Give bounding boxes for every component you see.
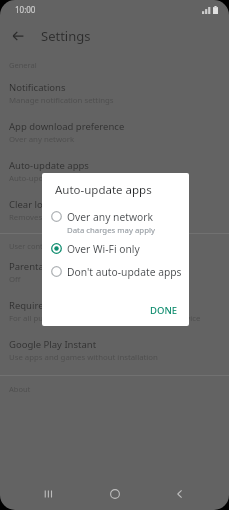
button[interactable]: Google Play Instant (0, 332, 229, 368)
staticText: Over Wi-Fi only (67, 242, 140, 256)
staticText: Parental controls (9, 260, 85, 273)
button[interactable]: Parental controls (0, 254, 229, 290)
staticText: Removes search history from this device (9, 212, 157, 223)
staticText: Use apps and games without installation (9, 352, 158, 363)
button[interactable]: DONE (144, 301, 184, 320)
staticText: Off (9, 274, 21, 285)
button[interactable]: Back (5, 23, 31, 49)
button[interactable]: Home (99, 478, 131, 510)
button[interactable]: Auto-update apps (0, 153, 229, 189)
staticText: Clear local search history (9, 198, 121, 211)
staticText: Auto-update apps (55, 182, 152, 198)
button[interactable]: App download preference (0, 114, 229, 150)
staticText: Don't auto-update apps (67, 265, 182, 279)
staticText: Auto-update apps (9, 159, 89, 172)
button[interactable]: Notifications (0, 75, 229, 111)
staticText: Google Play Instant (9, 338, 97, 351)
button[interactable]: Require authentication for purchases (0, 293, 229, 329)
staticText: Settings (41, 27, 91, 45)
staticText: 10:00 (15, 4, 36, 15)
button[interactable]: Back (164, 478, 196, 510)
button[interactable]: Recents (33, 478, 65, 510)
staticText: User controls (9, 241, 56, 251)
staticText: General (9, 60, 37, 70)
staticText: DONE (150, 304, 178, 317)
staticText: Auto-update apps over Wi-Fi only (9, 173, 131, 184)
staticText: For all purchases through Google Play on… (9, 313, 201, 324)
staticText: Over any network (67, 210, 154, 224)
staticText: Data charges may apply (67, 225, 155, 236)
button[interactable]: Don't auto-update apps (42, 261, 189, 282)
staticText: Manage notification settings (9, 95, 114, 106)
staticText: Over any network (9, 134, 75, 145)
button[interactable]: Over any network (42, 206, 189, 238)
staticText: About (9, 384, 31, 394)
staticText: Notifications (9, 81, 66, 94)
staticText: App download preference (9, 120, 125, 133)
button[interactable]: Over Wi-Fi only (42, 238, 189, 259)
staticText: Require authentication for purchases (9, 299, 175, 312)
button[interactable]: Clear local search history (0, 192, 229, 228)
